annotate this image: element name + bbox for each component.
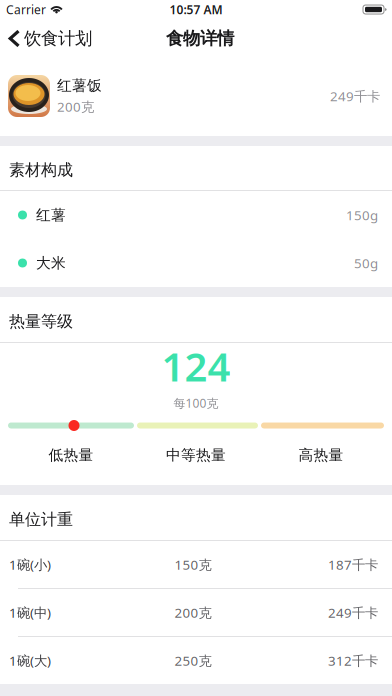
staticText: 10:57 AM [169, 1, 222, 17]
staticText: 饮食计划 [24, 28, 92, 49]
staticText: Carrier [6, 1, 46, 17]
staticText: 250克 [174, 652, 211, 669]
staticText: 249千卡 [328, 604, 378, 621]
staticText: 食物详情 [166, 28, 234, 49]
staticText: 单位计重 [9, 510, 73, 529]
staticText: 热量等级 [9, 312, 73, 331]
staticText: 红薯 [36, 206, 66, 224]
staticText: 1碗(大) [9, 652, 51, 669]
staticText: 200克 [174, 604, 211, 621]
staticText: 200克 [57, 98, 94, 115]
staticText: 素材构成 [9, 160, 73, 180]
staticText: 312千卡 [328, 652, 378, 669]
staticText: 150g [346, 206, 378, 224]
staticText: 红薯饭 [57, 77, 102, 95]
staticText: 大米 [36, 254, 66, 272]
staticText: 1碗(中) [9, 604, 51, 621]
button[interactable]: Back [0, 28, 92, 49]
staticText: 187千卡 [328, 556, 378, 573]
staticText: 低热量 [48, 446, 93, 464]
staticText: 中等热量 [166, 446, 226, 464]
staticText: 每100克 [173, 395, 218, 411]
staticText: 124 [161, 339, 230, 392]
staticText: 1碗(小) [9, 556, 51, 573]
staticText: 249千卡 [330, 87, 380, 105]
staticText: 150克 [174, 556, 211, 573]
staticText: 50g [354, 254, 378, 272]
staticText: 高热量 [298, 446, 343, 464]
